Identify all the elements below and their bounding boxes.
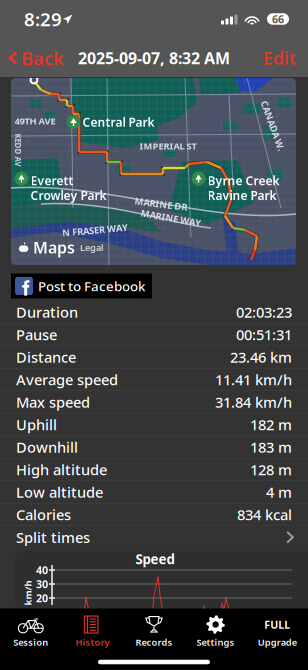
staticText: KEDD AV bbox=[1, 145, 34, 155]
staticText: 4 m bbox=[266, 482, 292, 502]
staticText: Central Park bbox=[82, 114, 154, 130]
staticText: Duration bbox=[16, 302, 78, 322]
button[interactable]: Session bbox=[0, 611, 62, 649]
staticText: Maps bbox=[33, 237, 75, 258]
staticText: Uphill bbox=[16, 415, 57, 434]
staticText: Ravine Park bbox=[207, 187, 276, 203]
staticText: Post to Facebook bbox=[38, 277, 145, 295]
staticText: Max speed bbox=[16, 392, 90, 412]
staticText: 834 kcal bbox=[237, 505, 292, 524]
staticText: History bbox=[75, 636, 109, 648]
staticText: Split times bbox=[16, 527, 90, 547]
staticText: 31.84 km/h bbox=[215, 392, 292, 412]
staticText: Upgrade bbox=[258, 636, 297, 648]
staticText: Settings bbox=[197, 636, 235, 648]
staticText: Records bbox=[135, 636, 172, 648]
staticText: N FRASER WAY bbox=[62, 224, 128, 236]
button[interactable]: Split times bbox=[0, 526, 308, 548]
staticText: 00:51:31 bbox=[236, 325, 292, 344]
staticText: Downhill bbox=[16, 437, 78, 457]
staticText: MARINE DR bbox=[134, 198, 187, 210]
staticText: 182 m bbox=[250, 415, 292, 434]
staticText: 183 m bbox=[250, 437, 292, 457]
staticText: 11.41 km/h bbox=[215, 370, 292, 389]
staticText: Session bbox=[13, 636, 48, 648]
staticText: Speed bbox=[135, 550, 174, 568]
staticText: CANADA W. bbox=[246, 120, 299, 132]
staticText: 23.46 km bbox=[230, 347, 292, 367]
staticText: 49TH AVE bbox=[14, 115, 55, 127]
staticText: Distance bbox=[16, 347, 76, 367]
staticText: Pause bbox=[16, 325, 57, 344]
staticText: 02:03:23 bbox=[236, 302, 292, 322]
staticText: 128 m bbox=[250, 460, 292, 479]
staticText: Edit bbox=[263, 46, 296, 69]
staticText: Byrne Creek bbox=[207, 173, 279, 188]
staticText: 30 bbox=[36, 577, 48, 591]
button[interactable]: Post to Facebook bbox=[11, 273, 152, 298]
staticText: High altitude bbox=[16, 460, 107, 479]
staticText: Everett bbox=[30, 173, 73, 188]
button[interactable]: Records bbox=[123, 611, 185, 649]
staticText: Average speed bbox=[16, 370, 118, 389]
staticText: Legal bbox=[80, 241, 104, 254]
staticText: 66 bbox=[272, 12, 284, 26]
button[interactable]: Back bbox=[0, 43, 70, 73]
staticText: 20 bbox=[36, 591, 48, 605]
staticText: 2025-09-07, 8:32 AM bbox=[78, 47, 230, 69]
staticText: Back bbox=[21, 46, 64, 70]
staticText: Low altitude bbox=[16, 482, 103, 502]
staticText: MARINE WAY bbox=[140, 212, 201, 224]
staticText: Calories bbox=[16, 505, 71, 524]
staticText: Crowley Park bbox=[30, 187, 106, 203]
button[interactable]: FULL bbox=[246, 611, 308, 649]
button[interactable]: Edit bbox=[255, 43, 308, 73]
staticText: 40 bbox=[36, 563, 48, 577]
button[interactable]: Settings bbox=[185, 611, 246, 649]
staticText: FULL bbox=[264, 617, 290, 632]
staticText: km/h bbox=[15, 587, 40, 599]
staticText: 8:29 bbox=[24, 7, 62, 31]
staticText: IMPERIAL ST bbox=[139, 140, 196, 152]
button[interactable]: History bbox=[62, 611, 123, 649]
